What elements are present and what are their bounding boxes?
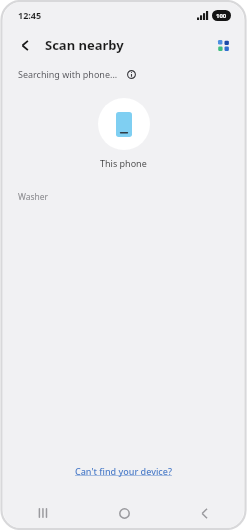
button[interactable]: Can't find your device? — [69, 462, 178, 480]
staticText: 100 — [216, 12, 227, 20]
staticText: Searching with phone... — [18, 68, 118, 80]
button[interactable]: Home — [84, 498, 164, 528]
button[interactable]: Back — [164, 498, 244, 528]
button[interactable]: SmartThings apps — [210, 32, 236, 58]
button[interactable] — [98, 98, 150, 150]
button[interactable]: Recents — [3, 498, 84, 528]
staticText: This phone — [100, 157, 147, 169]
staticText: Can't find your device? — [75, 465, 172, 477]
staticText: Scan nearby — [45, 36, 124, 54]
button[interactable]: Information — [123, 66, 139, 82]
button[interactable]: Back — [11, 31, 39, 59]
staticText: 12:45 — [18, 9, 42, 21]
staticText: Washer — [18, 191, 49, 203]
